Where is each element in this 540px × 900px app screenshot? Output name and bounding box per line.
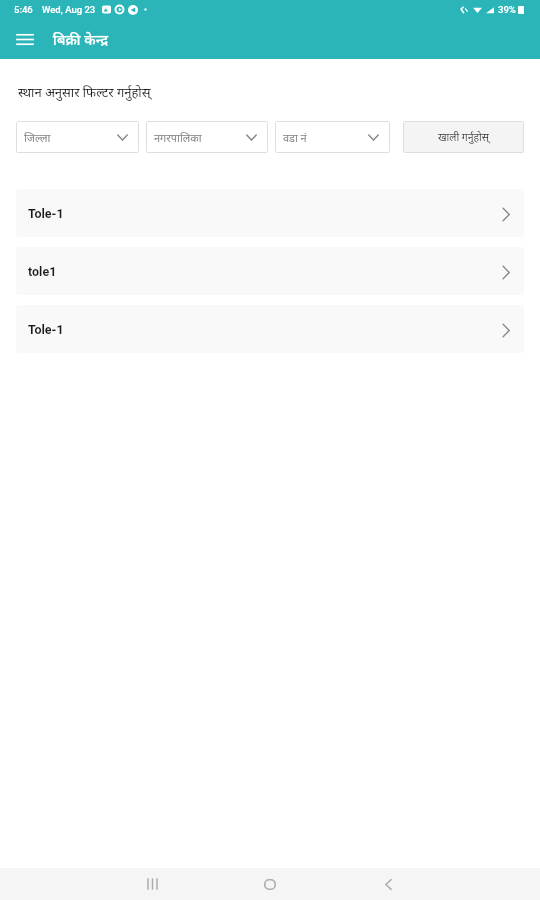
staticText: Tole-1 xyxy=(28,206,64,221)
staticText: वडा नं xyxy=(283,130,307,145)
button[interactable]: वडा नं xyxy=(275,121,390,153)
button[interactable]: Tole-1 xyxy=(16,305,524,353)
staticText: tole1 xyxy=(28,264,57,279)
button[interactable]: Back xyxy=(329,868,447,900)
staticText: Wed, Aug 23 xyxy=(42,4,96,15)
staticText: 5:46 xyxy=(14,4,33,15)
button[interactable]: Home xyxy=(211,868,329,900)
staticText: बिक्री केन्द्र xyxy=(53,29,109,49)
staticText: 39% xyxy=(498,4,516,15)
button[interactable]: जिल्ला xyxy=(16,121,139,153)
button[interactable]: Tole-1 xyxy=(16,189,524,237)
staticText: स्थान अनुसार फिल्टर गर्नुहोस् xyxy=(18,83,151,101)
button[interactable]: खाली गर्नुहोस् xyxy=(403,121,524,153)
staticText: खाली गर्नुहोस् xyxy=(438,130,489,144)
button[interactable]: Open navigation menu xyxy=(0,19,49,59)
staticText: जिल्ला xyxy=(24,130,51,145)
staticText: Tole-1 xyxy=(28,322,64,337)
button[interactable]: tole1 xyxy=(16,247,524,295)
button[interactable]: नगरपालिका xyxy=(146,121,268,153)
button[interactable]: Recent apps xyxy=(93,868,211,900)
staticText: नगरपालिका xyxy=(154,130,202,145)
